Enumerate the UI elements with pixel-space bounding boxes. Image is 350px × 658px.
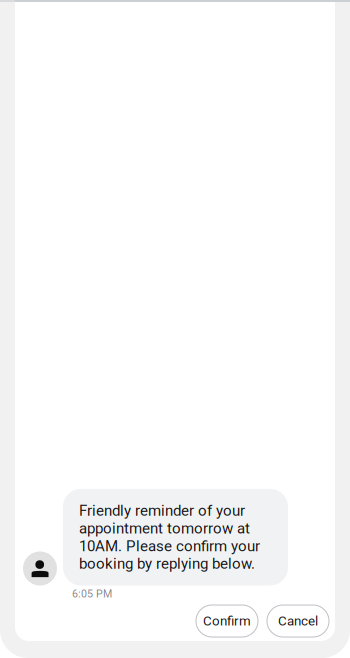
button[interactable]: Cancel (267, 605, 329, 637)
button[interactable]: Confirm (196, 605, 258, 637)
staticText: 6:05 PM (72, 587, 112, 600)
staticText: Confirm (203, 613, 251, 629)
staticText: Cancel (278, 613, 318, 629)
staticText: Friendly reminder of your appointment to… (79, 502, 260, 572)
